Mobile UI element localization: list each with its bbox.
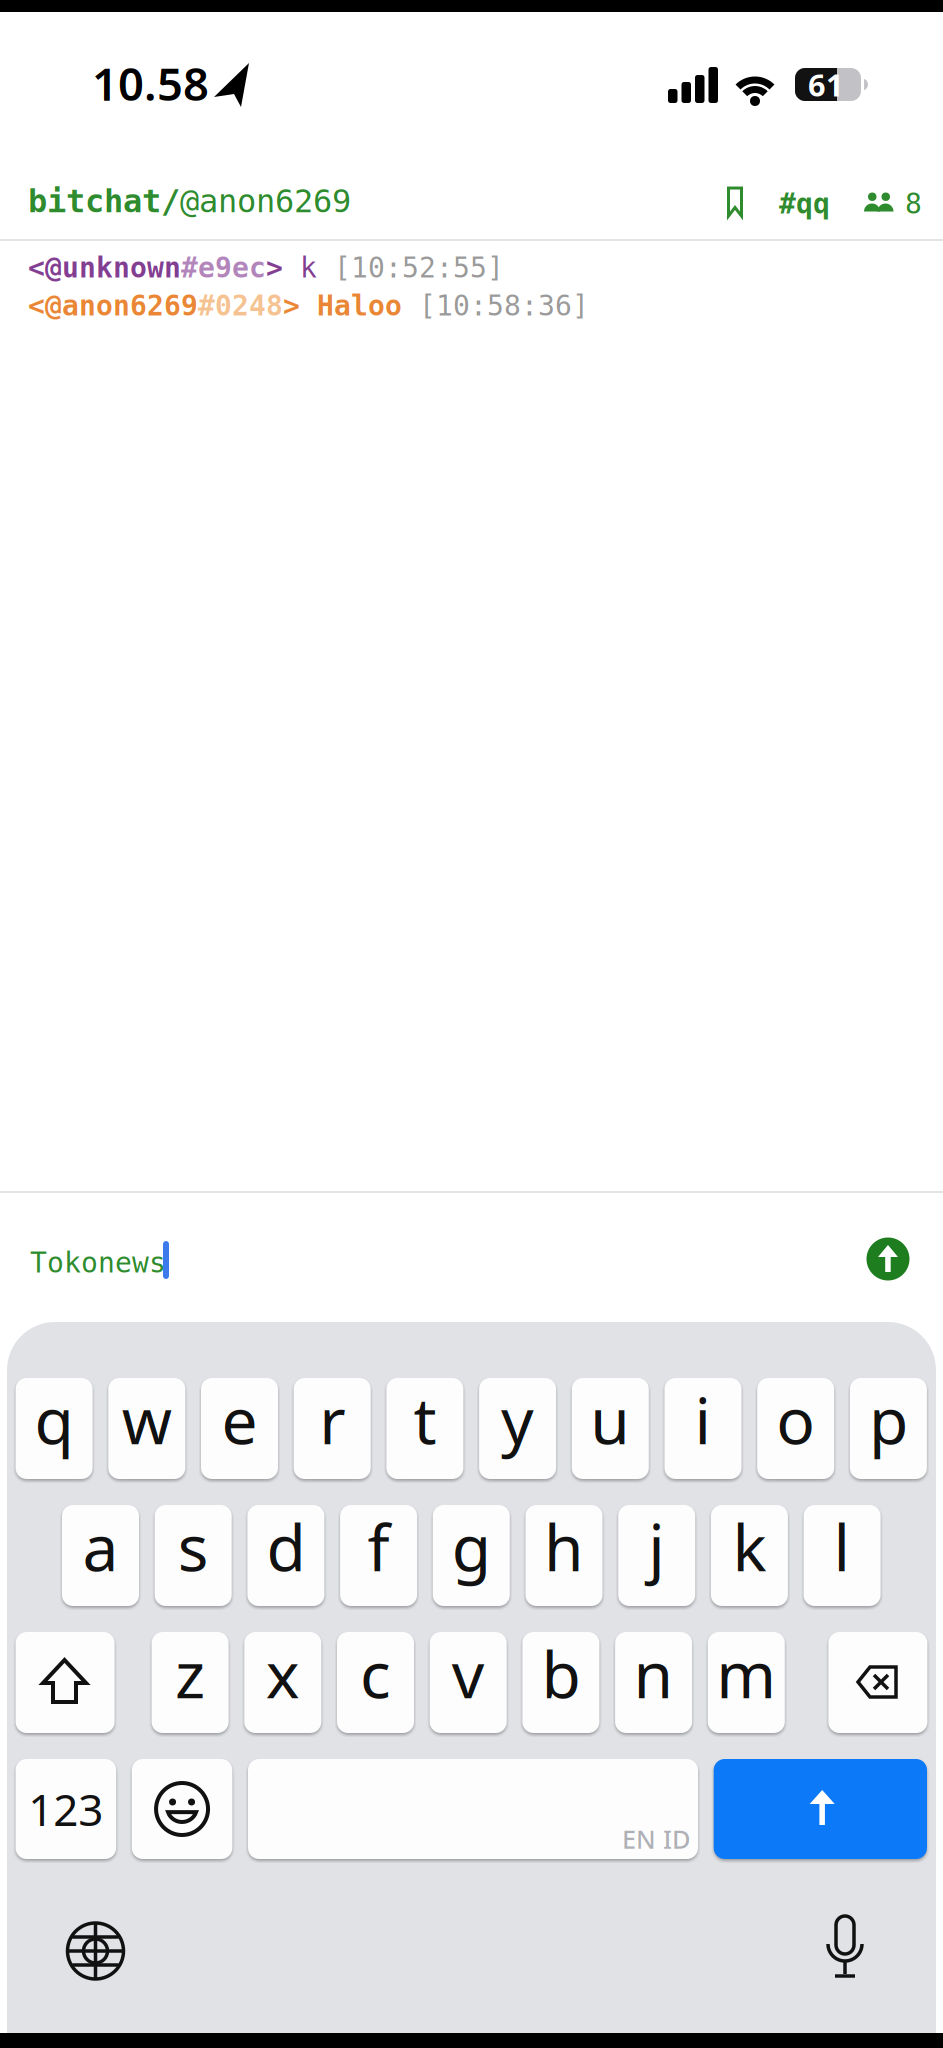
button[interactable]: p — [850, 1378, 927, 1479]
staticText: 8 — [905, 188, 922, 220]
staticText: e — [221, 1377, 257, 1462]
staticText: t — [413, 1377, 436, 1462]
staticText: q — [35, 1377, 74, 1462]
staticText: > — [266, 252, 283, 284]
staticText: i — [694, 1377, 711, 1462]
button[interactable]: r — [294, 1378, 371, 1479]
button[interactable]: s — [155, 1505, 232, 1606]
staticText: y — [501, 1377, 534, 1462]
button[interactable]: y — [479, 1378, 556, 1479]
staticText: k — [732, 1504, 766, 1589]
staticText: p — [869, 1377, 908, 1462]
button[interactable] — [866, 1237, 909, 1280]
staticText: #0248 — [198, 290, 283, 322]
button[interactable] — [823, 1914, 867, 1978]
staticText: j — [648, 1504, 665, 1589]
staticText: w — [122, 1377, 172, 1462]
button[interactable]: o — [757, 1378, 834, 1479]
staticText: c — [360, 1631, 391, 1716]
button[interactable]: u — [572, 1378, 649, 1479]
button[interactable]: h — [525, 1505, 602, 1606]
button[interactable]: 123 — [16, 1759, 116, 1859]
button[interactable] — [65, 1921, 125, 1981]
staticText: a — [82, 1504, 118, 1589]
button[interactable] — [828, 1632, 927, 1733]
staticText: Haloo — [300, 290, 419, 322]
button[interactable]: #qq — [779, 188, 830, 220]
staticText: 10.58 — [92, 53, 209, 113]
staticText: x — [266, 1631, 300, 1716]
button[interactable] — [248, 1759, 698, 1859]
staticText: o — [776, 1377, 815, 1462]
staticText: [10:52:55] — [334, 252, 504, 284]
button[interactable]: d — [247, 1505, 324, 1606]
staticText: n — [634, 1631, 674, 1716]
button[interactable]: c — [337, 1632, 414, 1733]
button[interactable]: bitchat/ — [28, 183, 351, 219]
button[interactable]: k — [711, 1505, 788, 1606]
staticText: 123 — [28, 1780, 103, 1838]
staticText: d — [266, 1504, 305, 1589]
staticText: k — [283, 252, 334, 284]
staticText: m — [716, 1631, 776, 1716]
staticText: s — [178, 1504, 209, 1589]
button[interactable]: t — [386, 1378, 463, 1479]
staticText: #qq — [779, 188, 830, 220]
staticText: Tokonews — [30, 1247, 166, 1279]
button[interactable]: x — [244, 1632, 321, 1733]
button[interactable]: v — [430, 1632, 507, 1733]
button[interactable]: w — [108, 1378, 185, 1479]
staticText: v — [452, 1631, 485, 1716]
button[interactable]: g — [433, 1505, 510, 1606]
staticText: #e9ec — [181, 252, 266, 284]
button[interactable]: b — [522, 1632, 599, 1733]
button[interactable] — [714, 1759, 927, 1859]
staticText: <@anon6269 — [28, 290, 198, 322]
button[interactable]: q — [16, 1378, 93, 1479]
staticText: l — [834, 1504, 851, 1589]
staticText: <@unknown — [28, 252, 181, 284]
button[interactable]: l — [804, 1505, 881, 1606]
button[interactable]: z — [152, 1632, 229, 1733]
staticText: bitchat/ — [28, 183, 180, 219]
staticText: @anon6269 — [180, 183, 351, 219]
staticText: g — [452, 1504, 491, 1589]
button[interactable]: e — [201, 1378, 278, 1479]
staticText: [10:58:36] — [419, 290, 589, 322]
staticText: f — [368, 1504, 390, 1589]
button[interactable] — [723, 185, 747, 221]
button[interactable]: f — [340, 1505, 417, 1606]
staticText: h — [544, 1504, 584, 1589]
button[interactable]: i — [664, 1378, 741, 1479]
staticText: 61 — [808, 64, 844, 105]
staticText: r — [319, 1377, 345, 1462]
button[interactable]: a — [62, 1505, 139, 1606]
button[interactable] — [16, 1632, 115, 1733]
staticText: b — [541, 1631, 580, 1716]
button[interactable]: j — [618, 1505, 695, 1606]
staticText: z — [175, 1631, 205, 1716]
staticText: > — [283, 290, 300, 322]
staticText: EN ID — [622, 1822, 691, 1856]
staticText: u — [590, 1377, 630, 1462]
button[interactable]: m — [708, 1632, 785, 1733]
button[interactable]: n — [615, 1632, 692, 1733]
button[interactable] — [862, 189, 900, 215]
button[interactable] — [132, 1759, 232, 1859]
